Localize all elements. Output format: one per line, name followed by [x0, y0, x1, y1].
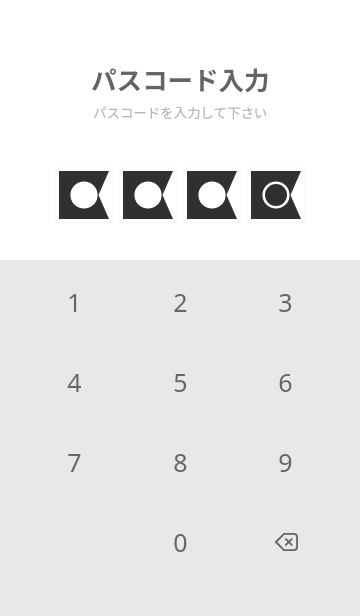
staticText: 9 — [278, 445, 293, 479]
button[interactable]: 2 — [138, 270, 222, 334]
staticText: 8 — [173, 445, 188, 479]
staticText: 3 — [278, 285, 293, 319]
button[interactable]: 1 — [32, 270, 116, 334]
button[interactable]: 9 — [243, 430, 327, 494]
button[interactable]: 5 — [138, 350, 222, 414]
staticText: 6 — [278, 365, 293, 399]
button[interactable]: 7 — [32, 430, 116, 494]
button[interactable]: Delete — [243, 510, 327, 574]
other: Delete — [275, 533, 298, 551]
staticText: パスコードを入力して下さい — [93, 102, 268, 121]
button[interactable]: 4 — [32, 350, 116, 414]
button[interactable]: 0 — [138, 510, 222, 574]
staticText: 4 — [67, 365, 82, 399]
button[interactable]: 6 — [243, 350, 327, 414]
staticText: パスコード入力 — [91, 60, 270, 97]
staticText: 0 — [173, 525, 188, 559]
button[interactable]: 8 — [138, 430, 222, 494]
staticText: 7 — [67, 445, 82, 479]
staticText: 5 — [173, 365, 188, 399]
button[interactable]: 3 — [243, 270, 327, 334]
staticText: 2 — [173, 285, 188, 319]
staticText: 1 — [67, 285, 82, 319]
